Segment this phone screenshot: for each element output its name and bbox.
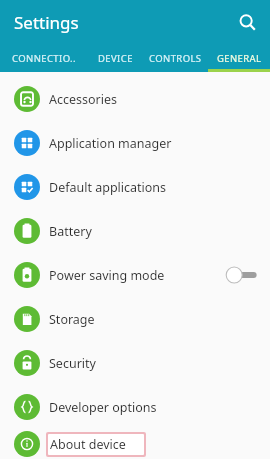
staticText: CONNECTIO.. xyxy=(12,52,76,65)
staticText: DEVICE xyxy=(98,52,133,65)
button[interactable]: Accessories xyxy=(0,77,270,121)
button[interactable]: About device xyxy=(0,429,270,459)
button[interactable]: Default applications xyxy=(0,165,270,209)
staticText: Power saving mode xyxy=(49,267,165,284)
button[interactable]: CONNECTIO.. xyxy=(0,44,88,72)
staticText: Developer options xyxy=(49,399,157,416)
staticText: GENERAL xyxy=(217,52,262,65)
button[interactable]: Security xyxy=(0,341,270,385)
staticText: Settings xyxy=(14,11,79,34)
staticText: Application manager xyxy=(49,135,172,152)
staticText: Battery xyxy=(49,223,92,240)
staticText: Security xyxy=(49,355,96,372)
button[interactable]: Battery xyxy=(0,209,270,253)
button[interactable]: Developer options xyxy=(0,385,270,429)
button[interactable]: Power saving mode toggle xyxy=(224,265,258,285)
button[interactable]: Search xyxy=(232,7,262,37)
staticText: Storage xyxy=(49,311,95,328)
button[interactable]: Power saving mode xyxy=(0,253,270,297)
staticText: Accessories xyxy=(49,91,118,108)
button[interactable]: CONTROLS xyxy=(143,44,208,72)
button[interactable]: GENERAL xyxy=(208,44,270,72)
staticText: Default applications xyxy=(49,179,167,196)
button[interactable]: Storage xyxy=(0,297,270,341)
button[interactable]: DEVICE xyxy=(88,44,143,72)
button[interactable]: Application manager xyxy=(0,121,270,165)
staticText: CONTROLS xyxy=(149,52,202,65)
staticText: About device xyxy=(50,436,126,453)
